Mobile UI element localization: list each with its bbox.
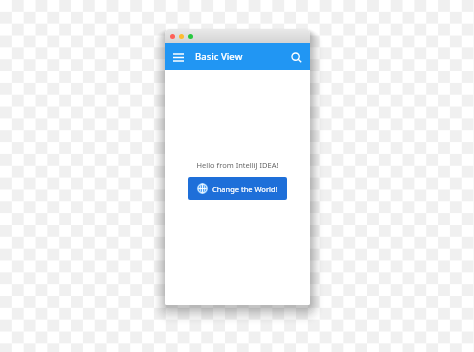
button[interactable]: Search (286, 47, 306, 67)
button[interactable]: Close (170, 34, 175, 39)
button[interactable]: Zoom (188, 34, 193, 39)
staticText: Hello from IntelliJ IDEA! (196, 160, 279, 170)
button[interactable]: Minimize (179, 34, 184, 39)
staticText: Change the World! (212, 184, 278, 194)
staticText: Basic View (195, 50, 243, 63)
button[interactable]: Change the World! (188, 177, 287, 200)
button[interactable]: Open navigation menu (168, 47, 188, 67)
